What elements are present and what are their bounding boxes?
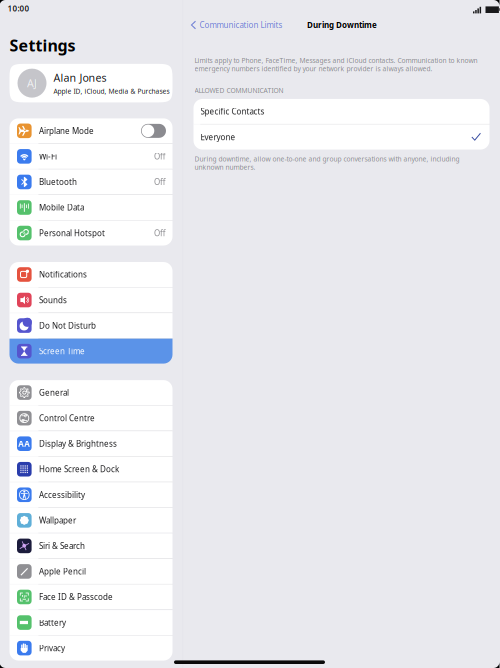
staticText: Off	[154, 228, 166, 238]
button[interactable]: General	[9, 380, 172, 405]
staticText: Everyone	[200, 132, 235, 142]
staticText: Alan Jones	[53, 71, 106, 85]
staticText: Face ID & Passcode	[39, 592, 113, 602]
staticText: Notifications	[39, 269, 87, 280]
button[interactable]: Wallpaper	[9, 508, 172, 533]
staticText: Settings	[9, 35, 75, 56]
button[interactable]: Apple Pencil	[9, 559, 172, 584]
staticText: Do Not Disturb	[39, 320, 96, 331]
button[interactable]: Control Centre	[9, 406, 172, 431]
staticText: Screen Time	[39, 346, 85, 356]
staticText: AJ	[27, 76, 37, 90]
staticText: Wi-Fi	[39, 151, 57, 162]
button[interactable]: Wi-Fi	[9, 144, 172, 169]
staticText: Communication Limits	[199, 20, 282, 30]
button[interactable]: AJ	[9, 64, 172, 102]
staticText: Battery	[39, 617, 66, 628]
staticText: Privacy	[39, 643, 65, 653]
button[interactable]: Face ID & Passcode	[9, 584, 172, 609]
staticText: Off	[154, 151, 166, 162]
button[interactable]: Notifications	[9, 262, 172, 287]
button[interactable]: Battery	[9, 610, 172, 635]
button[interactable]: AA	[9, 431, 172, 456]
staticText: Accessibility	[39, 489, 85, 500]
staticText: Off	[154, 177, 166, 187]
staticText: Specific Contacts	[200, 106, 264, 117]
button[interactable]: Sounds	[9, 288, 172, 312]
button[interactable]: Screen Time	[9, 339, 172, 364]
staticText: During downtime, allow one-to-one and gr…	[194, 155, 459, 172]
staticText: Personal Hotspot	[39, 228, 105, 238]
staticText: Limits apply to Phone, FaceTime, Message…	[194, 56, 477, 73]
staticText: Mobile Data	[39, 202, 84, 213]
staticText: Bluetooth	[39, 177, 77, 187]
button[interactable]: Accessibility	[9, 482, 172, 507]
button[interactable]: Do Not Disturb	[9, 313, 172, 338]
staticText: AA	[18, 438, 30, 449]
staticText: Display & Brightness	[39, 438, 117, 449]
staticText: Wallpaper	[39, 515, 76, 526]
staticText: General	[39, 387, 69, 398]
button[interactable]: Mobile Data	[9, 195, 172, 220]
staticText: During Downtime	[307, 20, 377, 30]
button[interactable]: Bluetooth	[9, 169, 172, 194]
staticText: Home Screen & Dock	[39, 464, 119, 474]
button[interactable]: Everyone	[193, 125, 489, 150]
button[interactable]: Privacy	[9, 636, 172, 660]
button[interactable]: Specific Contacts	[193, 99, 489, 124]
staticText: Airplane Mode	[39, 125, 94, 136]
staticText: Apple Pencil	[39, 566, 86, 577]
button[interactable]: Personal Hotspot	[9, 221, 172, 245]
button[interactable]: Home Screen & Dock	[9, 457, 172, 482]
staticText: ALLOWED COMMUNICATION	[194, 86, 283, 95]
staticText: Control Centre	[39, 413, 95, 423]
staticText: Siri & Search	[39, 541, 85, 551]
button[interactable]: Airplane Mode	[9, 118, 172, 143]
staticText: Sounds	[39, 295, 67, 305]
staticText: 10:00	[7, 3, 29, 14]
staticText: Apple ID, iCloud, Media & Purchases	[53, 87, 169, 96]
button[interactable]: Siri & Search	[9, 533, 172, 558]
button[interactable]: Communication Limits	[183, 17, 288, 33]
